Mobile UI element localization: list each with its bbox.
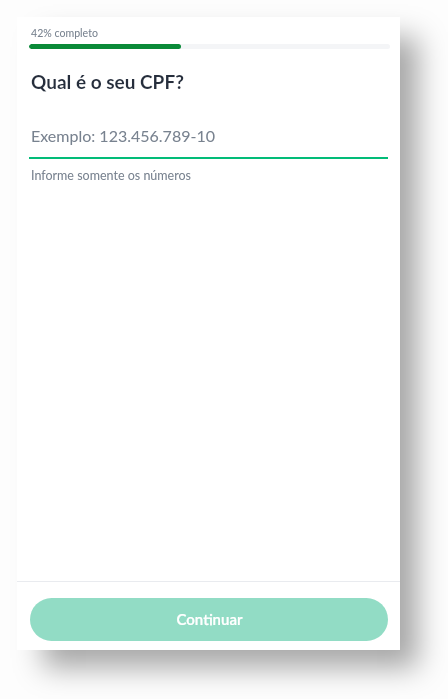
- button[interactable]: Continuar: [30, 598, 388, 641]
- staticText: Qual é o seu CPF?: [31, 70, 184, 93]
- staticText: 42% completo: [31, 27, 98, 40]
- staticText: Exemplo: 123.456.789-10: [31, 126, 215, 145]
- button[interactable]: Campo de CPF: [29, 117, 388, 159]
- staticText: Informe somente os números: [31, 168, 192, 183]
- staticText: Continuar: [176, 610, 243, 628]
